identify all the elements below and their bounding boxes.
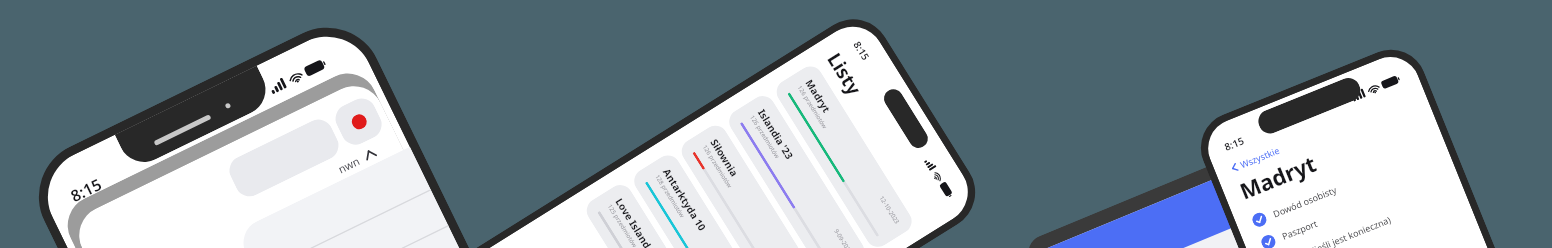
button[interactable]: Bilety lotnicze — [1284, 227, 1475, 248]
button[interactable]: Paszport — [1257, 160, 1448, 248]
staticText: Love Island — [612, 195, 655, 248]
button[interactable]: Love Island — [582, 180, 727, 248]
button[interactable]: Prawo jazdy — [1275, 204, 1466, 248]
button[interactable]: Madryt — [772, 61, 916, 248]
staticText: Listy — [821, 48, 867, 100]
button[interactable]: Islandia '23 — [724, 91, 869, 248]
staticText: 9-09-2023 — [832, 228, 854, 248]
button[interactable] — [224, 114, 344, 201]
staticText: 126 przedmiotów — [701, 143, 734, 190]
staticText: 126 przedmiotów — [796, 84, 829, 131]
staticText: Siłownia — [707, 136, 742, 179]
staticText: 8:15 — [67, 173, 105, 207]
button[interactable]: Wszystkie — [1229, 143, 1282, 174]
button[interactable]: Antarktyda 10 — [629, 150, 774, 248]
staticText: 8:15 — [850, 38, 873, 63]
staticText: 12-10-2023 — [878, 194, 901, 226]
staticText: Islandia '23 — [755, 106, 797, 162]
button[interactable]: Siłownia — [677, 121, 821, 248]
staticText: Wszystkie — [1238, 143, 1282, 170]
staticText: 128 przedmiotów — [653, 173, 686, 220]
staticText: 125 przedmiotów — [606, 203, 639, 248]
staticText: nwn — [335, 153, 363, 176]
button[interactable]: Wiza (jeśli jest konieczna) — [1266, 182, 1457, 248]
staticText: 126 przedmiotów — [748, 114, 781, 160]
staticText: Paszport — [1280, 217, 1319, 242]
staticText: Wiza (jeśli jest konieczna) — [1289, 213, 1393, 248]
staticText: Antarktyda 10 — [660, 166, 709, 233]
staticText: Dowód osobisty — [1271, 183, 1339, 220]
staticText: Madryt — [1235, 148, 1320, 206]
staticText: 8:15 — [1222, 133, 1246, 154]
button[interactable]: nwn — [335, 145, 378, 176]
button[interactable]: Dowód osobisty — [1248, 138, 1439, 233]
button[interactable]: Listy — [1088, 233, 1322, 248]
staticText: Madryt — [802, 77, 834, 116]
button[interactable]: Wybierz kolor — [330, 93, 387, 150]
